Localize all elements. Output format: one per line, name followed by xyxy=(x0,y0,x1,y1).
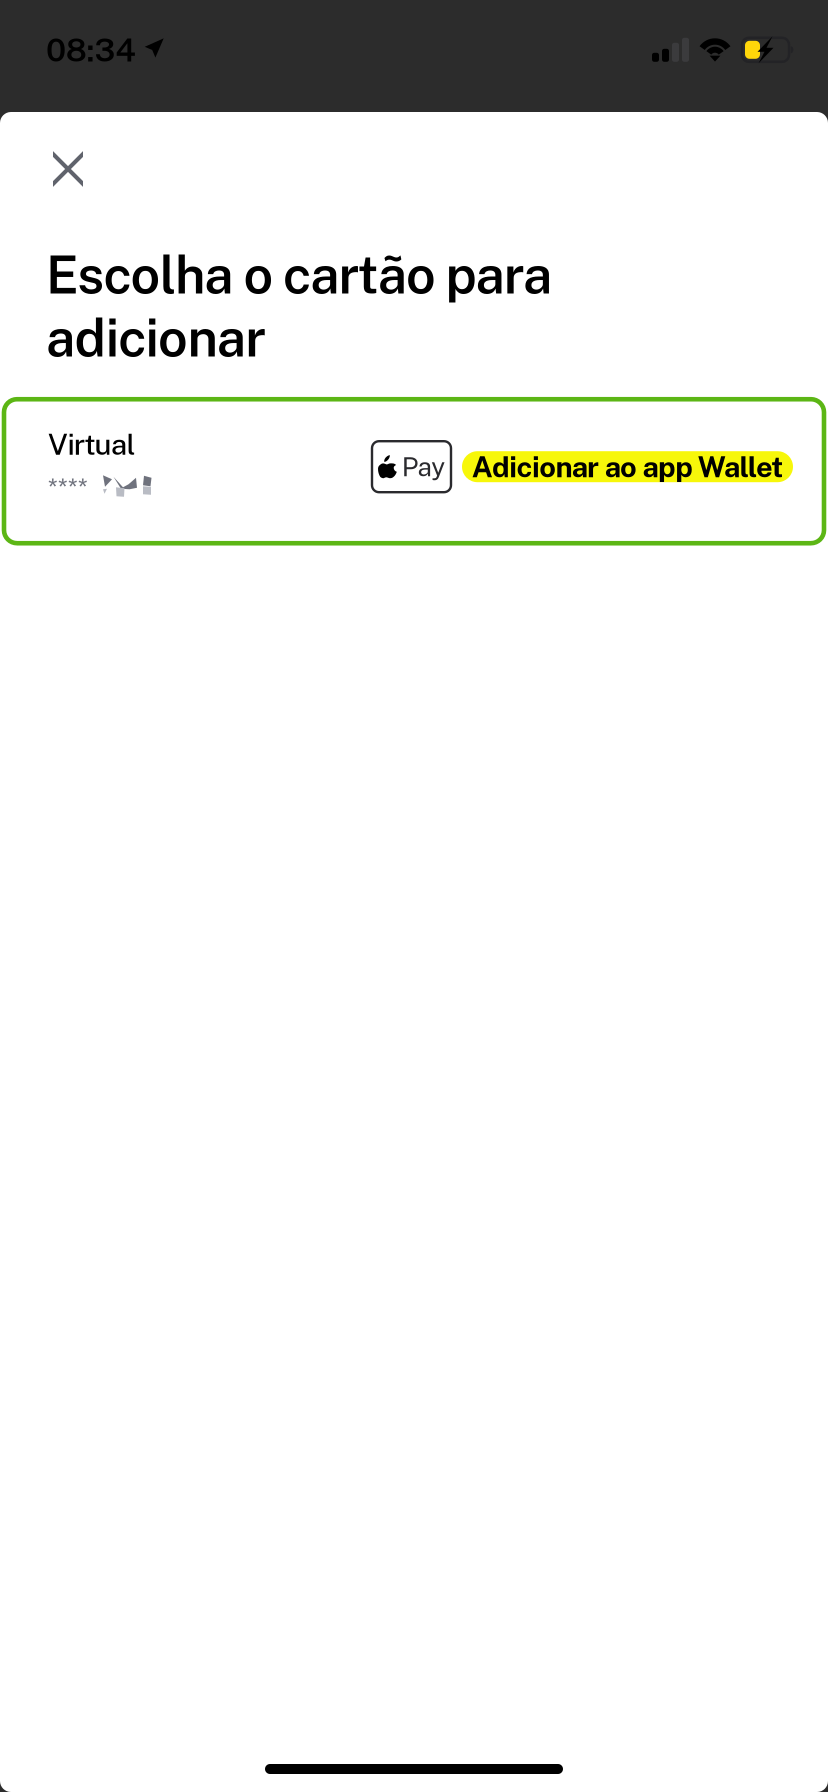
staticText: Adicionar ao app Wallet xyxy=(472,450,783,484)
staticText: 08:34 xyxy=(46,31,136,69)
button[interactable]: Virtual xyxy=(0,399,824,543)
staticText: Virtual xyxy=(48,427,135,461)
staticText: Escolha o cartão para xyxy=(46,244,552,305)
staticText: Pay xyxy=(402,451,445,482)
staticText: **** xyxy=(48,473,88,500)
staticText: adicionar xyxy=(46,307,266,368)
button[interactable]: Fechar xyxy=(0,112,136,228)
